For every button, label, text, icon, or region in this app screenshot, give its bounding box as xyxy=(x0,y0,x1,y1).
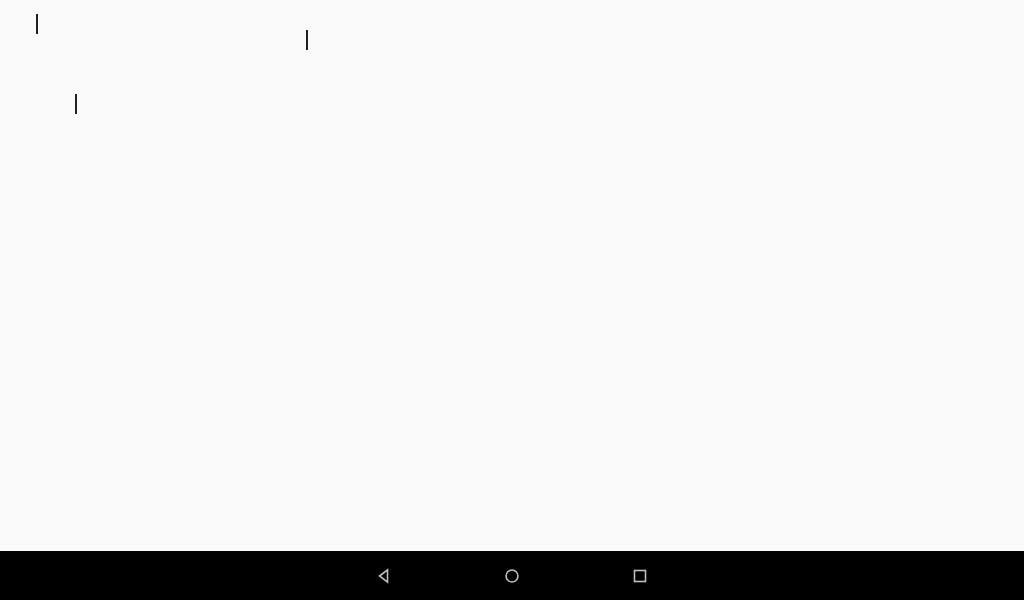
button[interactable]: Back xyxy=(360,552,408,600)
button[interactable]: Text field xyxy=(292,26,322,54)
button[interactable]: Text field xyxy=(22,10,52,38)
button[interactable]: Text field xyxy=(61,90,91,118)
button[interactable]: Recent apps xyxy=(616,552,664,600)
button[interactable]: Home xyxy=(488,552,536,600)
